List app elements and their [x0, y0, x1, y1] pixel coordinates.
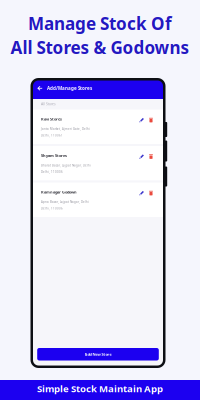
staticText: All Stores	[41, 102, 56, 106]
staticText: Shyam Stores	[41, 153, 67, 158]
button[interactable]: Shyam Stores	[33, 146, 163, 180]
staticText: Apna Bazar, Lajpat Nagar, Delhi	[41, 200, 89, 204]
staticText: Janta Market, Ajmeri Gate, Delhi	[41, 127, 90, 131]
staticText: All Stores & Godowns	[10, 36, 189, 59]
button[interactable]: Ramnagar Godown	[33, 182, 163, 217]
staticText: Add New Store	[84, 352, 111, 357]
staticText: Delhi, 110006	[41, 170, 63, 174]
button[interactable]: Add New Store	[37, 348, 159, 360]
staticText: Ravi Stores	[41, 116, 62, 121]
staticText: Bharat Bazar, Lajpat Nagar, Delhi	[41, 164, 91, 167]
staticText: Ramnagar Godown	[41, 189, 77, 194]
staticText: Add/Manage Stores	[47, 85, 92, 91]
staticText: Delhi, 110061	[41, 134, 63, 137]
button[interactable]: Back	[33, 83, 47, 93]
staticText: Simple Stock Maintain App	[37, 382, 163, 395]
staticText: Delhi, 110006	[41, 207, 63, 210]
button[interactable]: Ravi Stores	[33, 109, 163, 144]
staticText: Manage Stock Of	[28, 12, 172, 35]
